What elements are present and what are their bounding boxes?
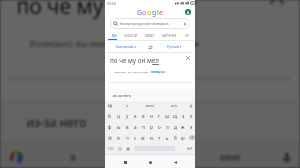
staticText: Возможно, вы имели в виду:: [114, 70, 149, 73]
button[interactable]: я: [114, 132, 123, 143]
button[interactable]: Voice input: [270, 141, 300, 168]
button[interactable]: б: [171, 132, 179, 143]
button[interactable]: болгарский русский переводчик: [110, 18, 190, 29]
button[interactable]: в: [123, 121, 131, 132]
button[interactable]: меня: [110, 141, 190, 168]
button[interactable]: о: [155, 121, 163, 132]
button[interactable]: а: [131, 121, 139, 132]
staticText: по че му он мел: [16, 0, 180, 20]
button[interactable]: ю: [179, 132, 187, 143]
button[interactable]: ж: [179, 121, 187, 132]
staticText: e: [159, 8, 163, 17]
button[interactable]: ц: [114, 110, 123, 121]
button[interactable]: Voice input: [186, 101, 195, 110]
staticText: е: [142, 113, 145, 119]
staticText: я: [126, 104, 128, 108]
button[interactable]: у: [123, 110, 131, 121]
button[interactable]: Emoji: [116, 143, 124, 154]
button[interactable]: д: [171, 121, 179, 132]
button[interactable]: р: [147, 121, 155, 132]
staticText: ю: [181, 135, 185, 141]
staticText: болгарский русский переводчик: [120, 22, 169, 26]
button[interactable]: т: [155, 132, 163, 143]
staticText: н: [150, 113, 153, 119]
staticText: КАРТИНКИ: [162, 34, 177, 38]
button[interactable]: мне: [190, 141, 270, 168]
button[interactable]: Русский ▾: [156, 42, 192, 52]
staticText: й: [108, 113, 111, 119]
staticText: почему он: [151, 70, 165, 73]
staticText: ы: [117, 124, 121, 130]
button[interactable]: Settings: [124, 143, 132, 154]
button[interactable]: л: [163, 121, 171, 132]
button[interactable]: м: [139, 132, 147, 143]
button[interactable]: Home: [145, 157, 155, 167]
button[interactable]: ч: [123, 132, 131, 143]
staticText: с: [134, 135, 137, 141]
button[interactable]: е: [139, 110, 147, 121]
button[interactable]: Backspace: [187, 132, 195, 143]
staticText: мне: [171, 104, 178, 108]
button[interactable]: НОВОСТИ: [120, 32, 141, 39]
staticText: ш: [165, 113, 170, 119]
staticText: г: [158, 113, 161, 119]
button[interactable]: ф: [105, 121, 114, 132]
button[interactable]: ВСЕ: [108, 32, 120, 39]
button[interactable]: н: [147, 110, 155, 121]
button[interactable]: КАРТИНКИ: [158, 32, 181, 39]
button[interactable]: Google: [0, 141, 33, 168]
button[interactable]: э: [187, 121, 195, 132]
button[interactable]: ВИДЕО: [141, 32, 158, 39]
staticText: po che mu on mel: [16, 24, 127, 27]
button[interactable]: с: [131, 132, 139, 143]
button[interactable]: Болгарский ▾: [108, 42, 144, 52]
button[interactable]: х: [187, 110, 195, 121]
staticText: o: [142, 8, 147, 17]
staticText: 09:58: [107, 1, 116, 6]
button[interactable]: Google: [105, 101, 115, 110]
staticText: б: [174, 135, 177, 141]
staticText: почему он: [153, 37, 200, 47]
staticText: Болгарский ▾: [116, 45, 136, 49]
button[interactable]: Back: [170, 157, 180, 167]
button[interactable]: Shift: [105, 132, 114, 143]
button[interactable]: ?123: [105, 143, 116, 154]
staticText: .: [180, 146, 182, 151]
button[interactable]: к: [131, 110, 139, 121]
button[interactable]: Enter: [184, 143, 195, 154]
staticText: к: [134, 113, 137, 119]
button[interactable]: ш: [163, 110, 171, 121]
button[interactable]: щ: [171, 110, 179, 121]
staticText: меня: [146, 104, 155, 108]
button[interactable]: ь: [163, 132, 171, 143]
button[interactable]: Account: [185, 9, 191, 15]
staticText: из-за него: [113, 93, 131, 98]
staticText: ВСЕ: [112, 34, 117, 38]
staticText: мне: [220, 151, 243, 164]
button[interactable]: п: [139, 121, 147, 132]
button[interactable]: мне: [162, 101, 186, 110]
button[interactable]: Clear: [183, 53, 192, 67]
button[interactable]: г: [155, 110, 163, 121]
staticText: я: [117, 135, 120, 141]
button[interactable]: меня: [138, 101, 162, 110]
button[interactable]: з: [179, 110, 187, 121]
button[interactable]: Recents: [120, 157, 130, 167]
button[interactable]: Swap languages: [144, 42, 156, 52]
button[interactable]: ы: [114, 121, 123, 132]
staticText: л: [166, 124, 169, 130]
button[interactable]: КН: [181, 32, 193, 39]
staticText: а: [134, 124, 137, 130]
button[interactable]: и: [147, 132, 155, 143]
button[interactable]: я: [115, 101, 138, 110]
staticText: ж: [181, 124, 185, 130]
staticText: КН: [185, 34, 189, 38]
staticText: A: [187, 10, 190, 15]
button[interactable]: Clear: [260, 0, 290, 27]
staticText: ь: [166, 135, 169, 141]
button[interactable]: й: [105, 110, 114, 121]
button[interactable]: я: [33, 141, 110, 168]
